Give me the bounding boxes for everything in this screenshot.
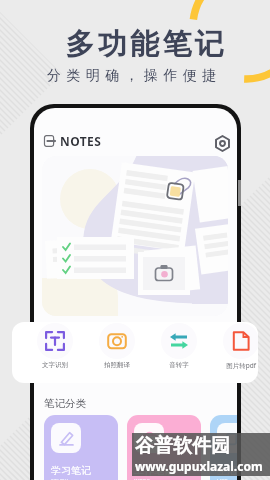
button[interactable]: 拍照翻译 [95,323,139,381]
button[interactable]: 图片转pdf [219,323,258,381]
button[interactable]: 文字识别 [33,323,77,381]
staticText: 谷普软件园 [135,434,230,458]
button[interactable]: 工作笔记 [127,415,201,480]
staticText: 多功能笔记 [64,26,225,63]
button[interactable]: 音转字 [157,323,201,381]
staticText: 工作笔记 [134,464,174,477]
staticText: 笔记分类 [44,397,86,410]
staticText: 学习笔记 [51,464,91,477]
button[interactable]: Settings [214,135,231,152]
button[interactable]: 生活笔记 [210,415,237,480]
staticText: 拍照翻译 [104,361,130,369]
staticText: 音转字 [169,361,189,369]
staticText: www.gupuxlazal.com [135,458,263,474]
staticText: WORK NOTES [134,478,152,480]
staticText: 图片转pdf [226,361,256,370]
button[interactable]: 学习笔记 [44,415,118,480]
staticText: STUDY NOTES [51,478,69,480]
button[interactable]: NOTES [44,133,102,149]
staticText: 生活笔记 [217,464,237,477]
staticText: 分类明确，操作便捷 [47,67,222,85]
staticText: 文字识别 [42,361,68,369]
staticText: LIFE NOTES [217,478,235,480]
staticText: NOTES [60,133,102,149]
